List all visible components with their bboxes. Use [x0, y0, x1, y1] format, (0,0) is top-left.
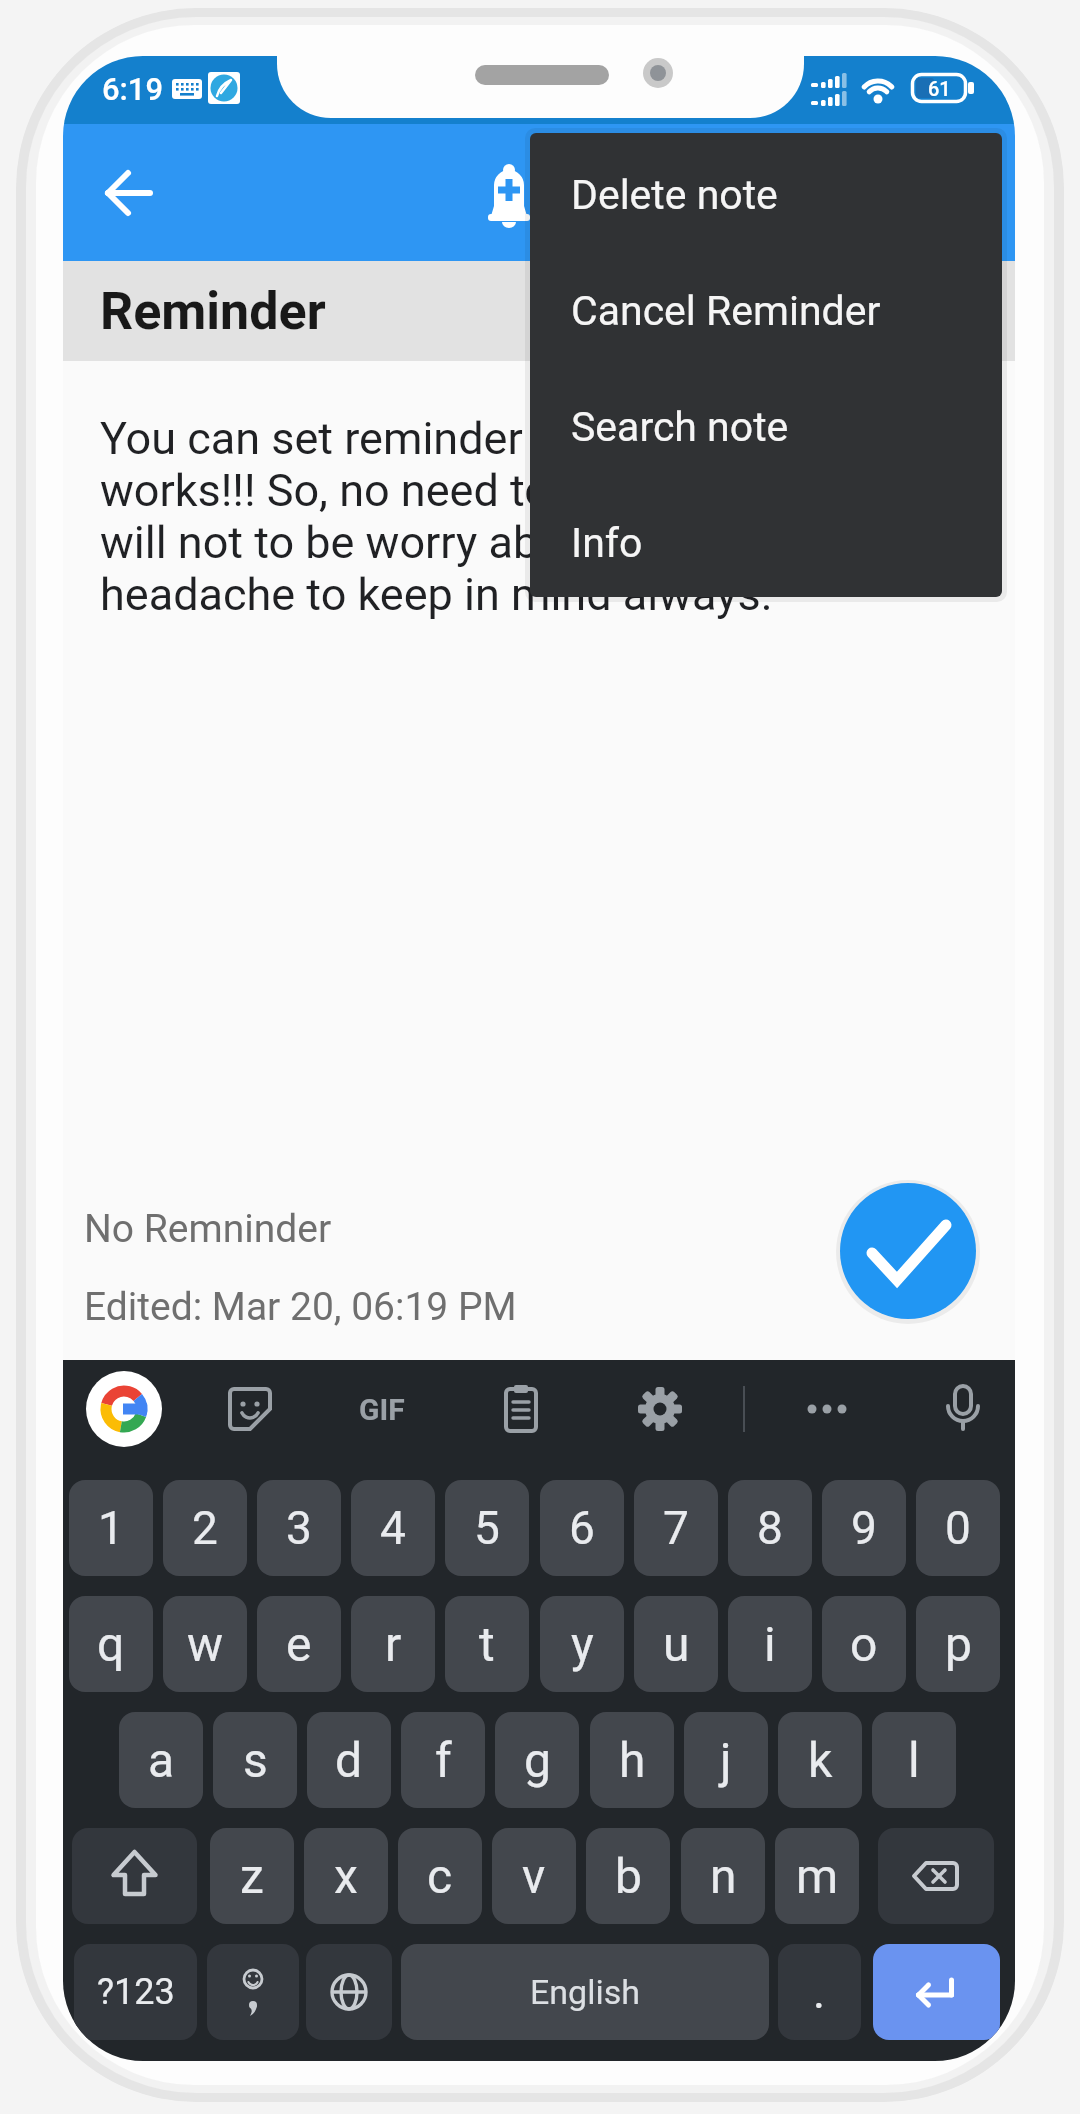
button[interactable]: r	[351, 1596, 435, 1692]
staticText: f	[435, 1732, 452, 1788]
button[interactable]: b	[586, 1828, 670, 1924]
button[interactable]: Search note	[530, 369, 1002, 485]
button[interactable]: s	[213, 1712, 297, 1808]
button[interactable]: l	[872, 1712, 956, 1808]
staticText: e	[286, 1616, 312, 1672]
button[interactable]: i	[728, 1596, 812, 1692]
button[interactable]: q	[69, 1596, 153, 1692]
staticText: Edited: Mar 20, 06:19 PM	[84, 1284, 517, 1330]
staticText: GIF	[359, 1392, 405, 1427]
staticText: Reminder	[100, 281, 326, 342]
button[interactable]: j	[684, 1712, 768, 1808]
button[interactable]	[803, 1387, 851, 1431]
button[interactable]: v	[492, 1828, 576, 1924]
button[interactable]: 2	[163, 1480, 247, 1576]
button[interactable]: o	[822, 1596, 906, 1692]
button[interactable]: c	[398, 1828, 482, 1924]
button[interactable]	[840, 1183, 976, 1319]
staticText: u	[663, 1616, 690, 1672]
staticText: t	[479, 1616, 495, 1672]
button[interactable]: e	[257, 1596, 341, 1692]
staticText: No Remninder	[84, 1206, 332, 1252]
button[interactable]: Delete note	[530, 137, 1002, 253]
staticText: s	[243, 1732, 268, 1788]
staticText: 9	[851, 1501, 877, 1555]
staticText: 2	[192, 1501, 218, 1555]
button[interactable]: 3	[257, 1480, 341, 1576]
button[interactable]	[207, 1944, 299, 2040]
staticText: k	[808, 1732, 833, 1788]
button[interactable]	[873, 1944, 1000, 2040]
staticText: 3	[286, 1501, 312, 1555]
staticText: 61	[928, 77, 951, 100]
staticText: x	[334, 1848, 358, 1904]
staticText: i	[764, 1616, 776, 1672]
button[interactable]: Cancel Reminder	[530, 253, 1002, 369]
button[interactable]: t	[445, 1596, 529, 1692]
staticText: z	[240, 1848, 264, 1904]
button[interactable]: GIF	[342, 1387, 422, 1431]
button[interactable]	[636, 1385, 684, 1433]
staticText: 6:19	[102, 71, 164, 107]
button[interactable]	[224, 1383, 276, 1435]
button[interactable]: 6	[540, 1480, 624, 1576]
button[interactable]: h	[590, 1712, 674, 1808]
staticText: o	[850, 1616, 878, 1672]
button[interactable]	[497, 1384, 545, 1434]
staticText: b	[615, 1848, 642, 1904]
button[interactable]: 9	[822, 1480, 906, 1576]
staticText: g	[524, 1732, 551, 1788]
staticText: j	[720, 1732, 732, 1788]
staticText: 6	[569, 1501, 595, 1555]
button[interactable]	[401, 1944, 769, 2040]
button[interactable]	[479, 164, 539, 226]
button[interactable]: k	[778, 1712, 862, 1808]
staticText: 0	[945, 1501, 971, 1555]
staticText: c	[427, 1848, 453, 1904]
staticText: y	[571, 1616, 594, 1672]
button[interactable]	[93, 157, 165, 229]
button[interactable]: .	[778, 1944, 861, 2040]
staticText: Search note	[571, 403, 789, 451]
button[interactable]	[306, 1944, 392, 2040]
button[interactable]: w	[163, 1596, 247, 1692]
button[interactable]: 7	[634, 1480, 718, 1576]
staticText: 5	[474, 1501, 500, 1555]
staticText: English	[530, 1972, 641, 2012]
staticText: 8	[757, 1501, 783, 1555]
button[interactable]: p	[916, 1596, 1000, 1692]
button[interactable]: ?123	[74, 1944, 197, 2040]
staticText: 4	[380, 1501, 406, 1555]
staticText: p	[945, 1616, 972, 1672]
staticText: n	[710, 1848, 737, 1904]
button[interactable]: 1	[69, 1480, 153, 1576]
button[interactable]: z	[210, 1828, 294, 1924]
button[interactable]	[72, 1828, 197, 1924]
staticText: q	[97, 1616, 125, 1672]
button[interactable]: 5	[445, 1480, 529, 1576]
button[interactable]: d	[307, 1712, 391, 1808]
button[interactable]: u	[634, 1596, 718, 1692]
button[interactable]: 8	[728, 1480, 812, 1576]
button[interactable]: n	[681, 1828, 765, 1924]
button[interactable]	[943, 1384, 983, 1434]
button[interactable]: Info	[530, 485, 1002, 597]
button[interactable]: 4	[351, 1480, 435, 1576]
staticText: Delete note	[571, 171, 778, 219]
button[interactable]	[878, 1828, 994, 1924]
staticText: You can set reminder and it works!!! So,…	[100, 412, 773, 621]
staticText: d	[335, 1732, 363, 1788]
button[interactable]: m	[775, 1828, 859, 1924]
button[interactable]: a	[119, 1712, 203, 1808]
staticText: v	[522, 1848, 546, 1904]
staticText: h	[619, 1732, 646, 1788]
button[interactable]: f	[401, 1712, 485, 1808]
staticText: .	[813, 1965, 826, 2019]
button[interactable]: g	[495, 1712, 579, 1808]
staticText: w	[187, 1616, 224, 1672]
button[interactable]: x	[304, 1828, 388, 1924]
button[interactable]: y	[540, 1596, 624, 1692]
button[interactable]	[86, 1371, 162, 1447]
staticText: Info	[571, 519, 643, 567]
button[interactable]: 0	[916, 1480, 1000, 1576]
